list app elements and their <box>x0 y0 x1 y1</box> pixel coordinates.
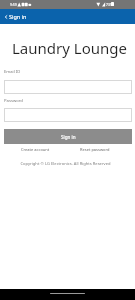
button[interactable] <box>4 108 132 122</box>
staticText: 9:59 <box>10 2 17 7</box>
staticText: Laundry Lounge <box>12 38 127 58</box>
staticText: 73% <box>106 2 113 7</box>
button[interactable] <box>4 80 132 94</box>
staticText: Create account <box>21 147 50 152</box>
staticText: Password <box>4 98 23 104</box>
staticText: Sign in <box>9 13 27 20</box>
button[interactable]: Back <box>0 9 11 24</box>
staticText: Email ID <box>4 69 21 75</box>
button[interactable]: Sign in <box>4 129 132 144</box>
staticText: Copyright © LG Electronics. All Rights R… <box>0 161 133 167</box>
button[interactable]: Create account <box>21 147 50 152</box>
staticText: Reset password <box>80 147 110 152</box>
button[interactable]: Reset password <box>80 147 110 152</box>
staticText: Sign in <box>61 134 76 140</box>
